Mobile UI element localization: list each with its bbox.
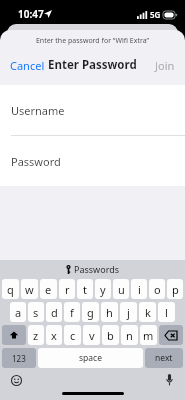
button[interactable]: k — [139, 302, 156, 322]
staticText: Password — [11, 154, 61, 169]
staticText: Enter Password — [48, 57, 137, 73]
staticText: r — [65, 282, 70, 297]
staticText: q — [7, 282, 14, 297]
staticText: u — [118, 282, 125, 297]
button[interactable]: Join — [145, 54, 185, 77]
button[interactable]: s — [28, 302, 44, 322]
staticText: space — [79, 352, 102, 364]
button[interactable]: y — [95, 279, 111, 299]
button[interactable]: d — [46, 302, 62, 322]
button[interactable]: Backspace — [159, 325, 183, 345]
staticText: j — [127, 305, 130, 320]
staticText: h — [106, 305, 113, 320]
staticText: next — [155, 352, 173, 364]
staticText: f — [70, 305, 74, 320]
button[interactable]: t — [77, 279, 93, 299]
button[interactable]: f — [64, 302, 80, 322]
staticText: l — [165, 305, 168, 320]
button[interactable]: o — [149, 279, 165, 299]
button[interactable]: next — [145, 348, 183, 368]
staticText: g — [87, 305, 94, 320]
button[interactable]: m — [140, 325, 157, 345]
button[interactable]: u — [113, 279, 129, 299]
button[interactable]: j — [120, 302, 137, 322]
staticText: d — [51, 305, 58, 320]
staticText: 5G — [150, 9, 161, 20]
button[interactable]: w — [21, 279, 38, 299]
button[interactable]: p — [167, 279, 183, 299]
staticText: m — [143, 328, 154, 343]
button[interactable]: b — [102, 325, 119, 345]
staticText: v — [89, 328, 95, 343]
button[interactable]: v — [83, 325, 100, 345]
button[interactable]: Username — [0, 85, 185, 135]
staticText: e — [45, 282, 52, 297]
button[interactable]: Password — [0, 136, 185, 186]
staticText: Cancel — [10, 58, 45, 73]
button[interactable]: e — [40, 279, 57, 299]
button[interactable]: Cancel — [0, 54, 55, 77]
staticText: s — [33, 305, 39, 320]
staticText: 123 — [12, 353, 26, 364]
button[interactable]: x — [46, 325, 62, 345]
staticText: k — [145, 305, 151, 320]
staticText: y — [100, 282, 106, 297]
staticText: a — [15, 305, 22, 320]
staticText: x — [51, 328, 57, 343]
button[interactable]: q — [2, 279, 19, 299]
staticText: n — [126, 328, 133, 343]
button[interactable]: h — [101, 302, 118, 322]
staticText: 10:47 — [18, 7, 44, 21]
staticText: c — [70, 328, 76, 343]
button[interactable]: z — [28, 325, 44, 345]
button[interactable]: Passwords — [0, 260, 185, 277]
button[interactable]: g — [82, 302, 99, 322]
button[interactable]: l — [158, 302, 175, 322]
staticText: p — [172, 282, 179, 297]
staticText: Username — [11, 103, 65, 118]
button[interactable]: space — [38, 348, 143, 368]
staticText: o — [154, 282, 161, 297]
button[interactable]: c — [64, 325, 81, 345]
button[interactable]: Emoji — [9, 373, 23, 387]
button[interactable]: Dictation — [162, 373, 176, 387]
button[interactable]: n — [121, 325, 138, 345]
staticText: t — [83, 282, 87, 297]
button[interactable]: a — [10, 302, 26, 322]
staticText: z — [33, 328, 39, 343]
staticText: i — [138, 282, 141, 297]
staticText: b — [107, 328, 114, 343]
staticText: Enter the password for “Wifi Extra” — [0, 36, 185, 46]
button[interactable]: r — [59, 279, 75, 299]
staticText: w — [25, 282, 34, 297]
button[interactable]: i — [131, 279, 147, 299]
button[interactable]: 123 — [2, 348, 36, 368]
staticText: Join — [155, 58, 175, 73]
button[interactable]: Shift — [2, 325, 26, 345]
staticText: Passwords — [74, 263, 120, 275]
